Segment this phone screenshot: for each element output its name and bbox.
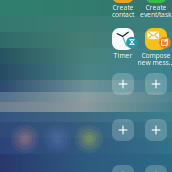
staticText: Create — [112, 3, 133, 12]
button[interactable]: Add shortcut — [145, 73, 167, 95]
staticText: contact — [112, 10, 134, 19]
staticText: Compose — [141, 51, 170, 60]
button[interactable]: Add shortcut — [145, 119, 167, 141]
button[interactable]: Timer — [112, 28, 134, 50]
button[interactable]: Add shortcut — [112, 119, 134, 141]
staticText: new mess... — [137, 58, 172, 67]
staticText: Timer — [113, 51, 132, 60]
button[interactable]: Add shortcut — [145, 165, 167, 172]
staticText: Create — [145, 3, 166, 12]
staticText: event/task — [140, 10, 172, 19]
button[interactable]: Add shortcut — [112, 165, 134, 172]
button[interactable]: Add shortcut — [112, 73, 134, 95]
button[interactable]: Compose new message — [145, 28, 167, 50]
